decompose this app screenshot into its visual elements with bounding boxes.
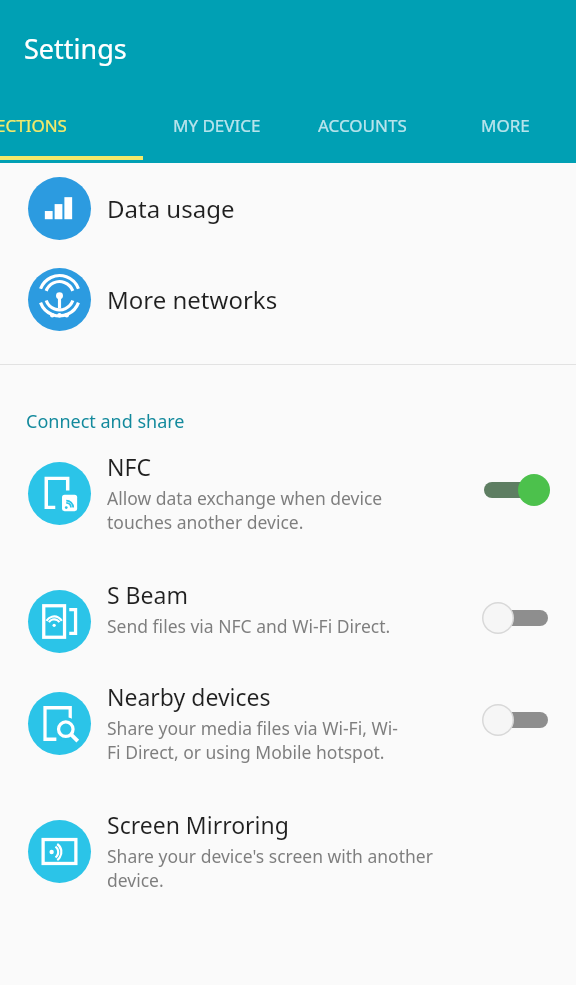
button[interactable]: Nearby devices off [480, 700, 552, 740]
button[interactable]: ECTIONS [0, 100, 143, 156]
staticText: ACCOUNTS [318, 114, 407, 137]
staticText: Settings [24, 30, 127, 67]
button[interactable]: Data usage [0, 163, 576, 253]
button[interactable]: S Beam off [480, 598, 552, 638]
staticText: NFC [107, 451, 151, 482]
staticText: MORE [481, 114, 530, 137]
staticText: Connect and share [26, 409, 185, 434]
button[interactable]: MORE [434, 100, 576, 156]
staticText: Allow data exchange when device [107, 486, 383, 510]
staticText: Fi Direct, or using Mobile hotspot. [107, 740, 385, 764]
button[interactable]: Screen Mirroring [0, 801, 576, 929]
staticText: S Beam [107, 579, 188, 610]
staticText: Data usage [107, 192, 235, 225]
staticText: device. [107, 868, 164, 892]
staticText: Nearby devices [107, 681, 271, 712]
staticText: MY DEVICE [173, 114, 261, 137]
button[interactable]: Nearby devices [0, 673, 576, 801]
button[interactable]: NFC [0, 443, 576, 571]
button[interactable]: NFC on [480, 470, 552, 510]
staticText: Screen Mirroring [107, 809, 289, 840]
button[interactable]: MY DEVICE [143, 100, 290, 156]
staticText: ECTIONS [0, 114, 67, 137]
staticText: More networks [107, 283, 278, 316]
button[interactable]: S Beam [0, 571, 576, 673]
staticText: Share your media files via Wi-Fi, Wi- [107, 716, 398, 740]
button[interactable]: More networks [0, 253, 576, 345]
staticText: Send files via NFC and Wi-Fi Direct. [107, 614, 391, 638]
staticText: touches another device. [107, 510, 304, 534]
button[interactable]: ACCOUNTS [290, 100, 434, 156]
staticText: Share your device's screen with another [107, 844, 433, 868]
